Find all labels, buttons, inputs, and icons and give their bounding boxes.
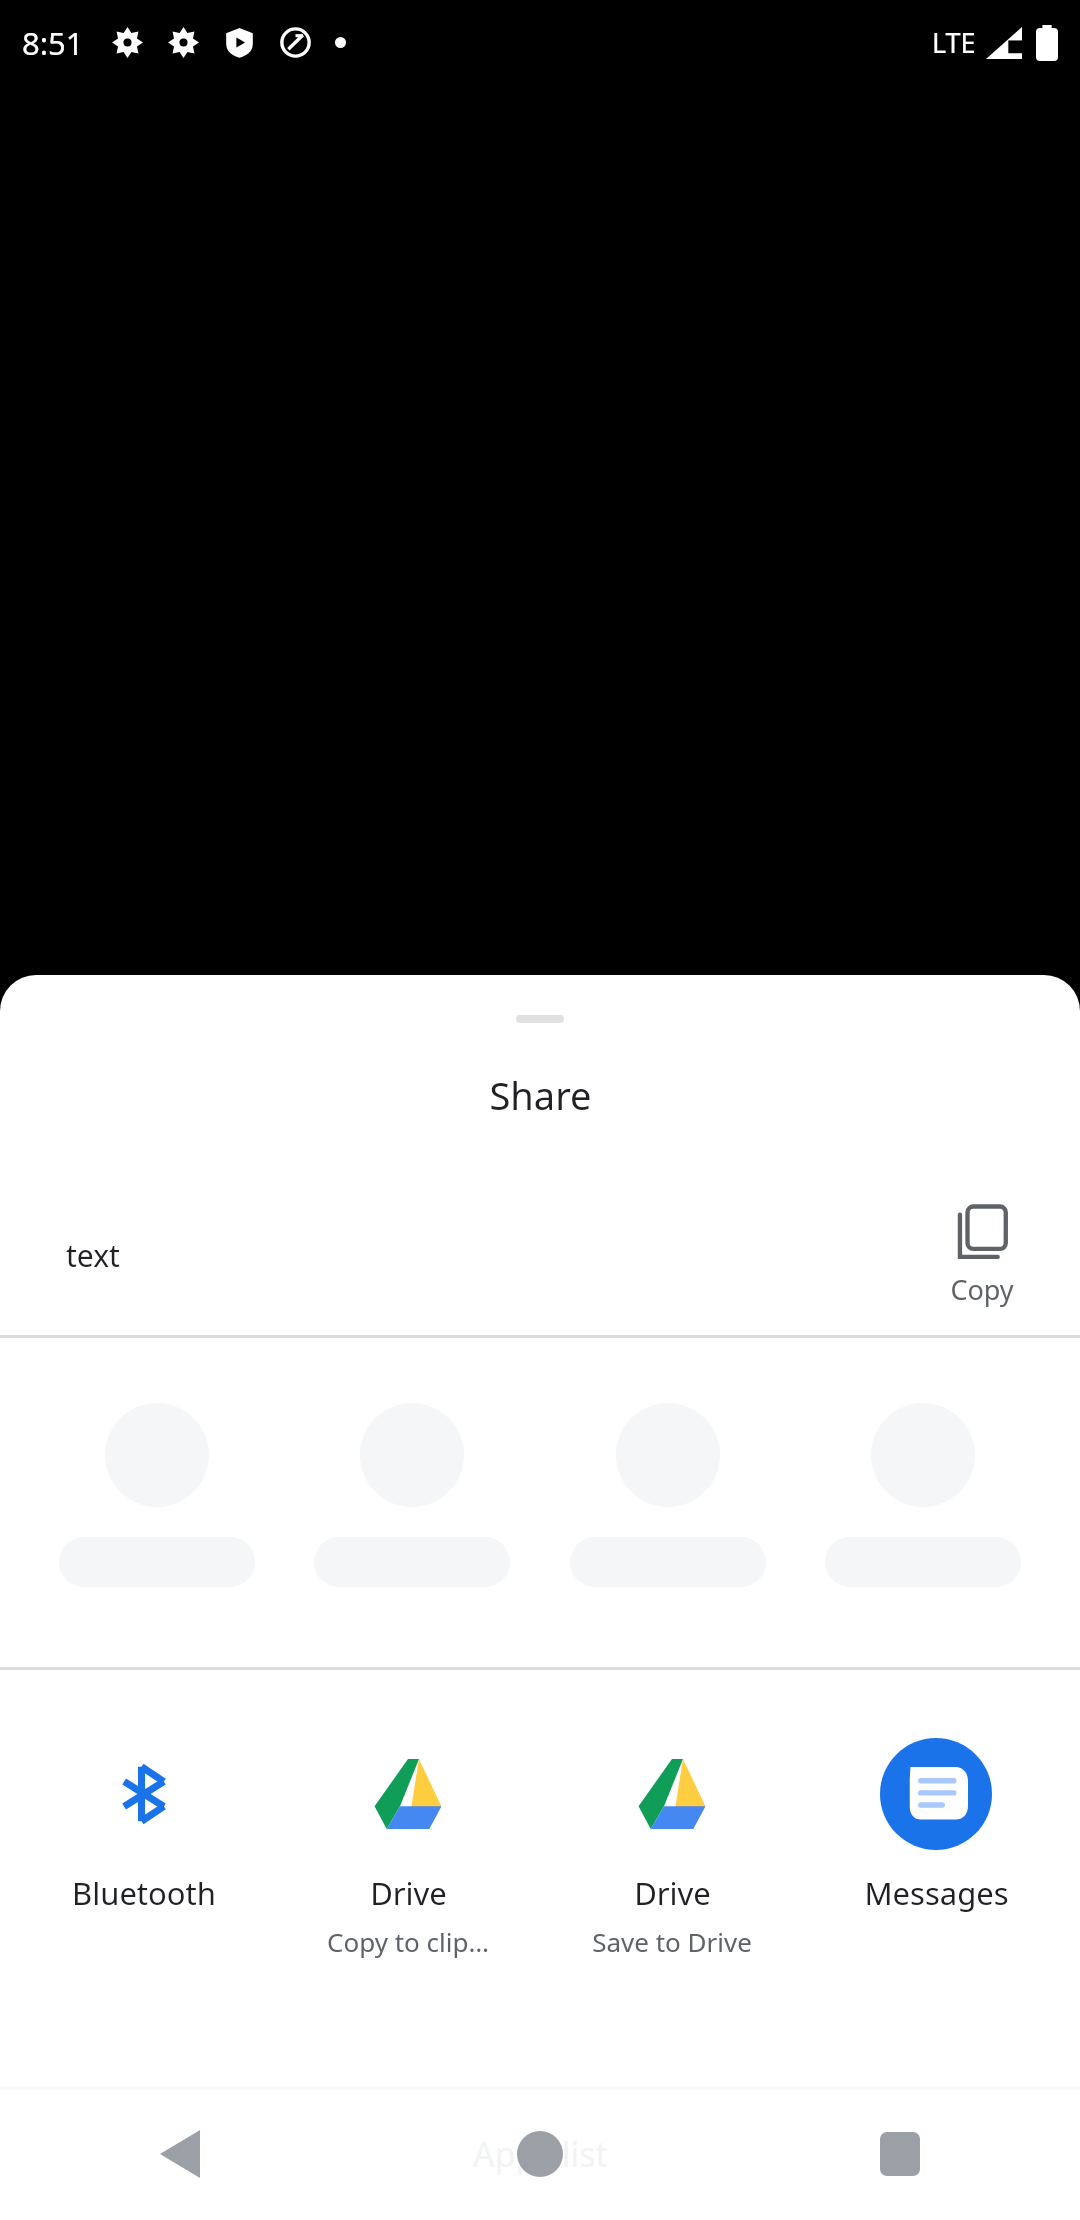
other: Bluetooth — [88, 1738, 200, 1850]
button[interactable]: Drive — [288, 1738, 528, 1959]
staticText: Messages — [864, 1872, 1009, 1914]
staticText: Drive — [370, 1872, 447, 1914]
other: Drive — [352, 1738, 464, 1850]
staticText: Drive — [634, 1872, 711, 1914]
button[interactable]: Bluetooth — [24, 1738, 264, 1914]
staticText: Copy — [950, 1271, 1014, 1308]
staticText: Save to Drive — [592, 1924, 752, 1959]
staticText: Apps list — [473, 2131, 608, 2177]
staticText: LTE — [932, 24, 976, 61]
other: Drive — [616, 1738, 728, 1850]
button[interactable]: Recent apps — [720, 2087, 1080, 2220]
other: Messages — [880, 1738, 992, 1850]
button[interactable]: Drive — [552, 1738, 792, 1959]
staticText: Copy to clip… — [327, 1924, 489, 1959]
staticText: Share — [489, 1069, 592, 1121]
button[interactable]: Home — [360, 2087, 720, 2220]
button[interactable]: Copy — [934, 1195, 1030, 1316]
button[interactable]: Messages — [816, 1738, 1056, 1914]
staticText: Bluetooth — [72, 1872, 216, 1914]
staticText: text — [66, 1235, 120, 1276]
button[interactable]: Back — [0, 2087, 360, 2220]
staticText: 8:51 — [22, 22, 84, 64]
